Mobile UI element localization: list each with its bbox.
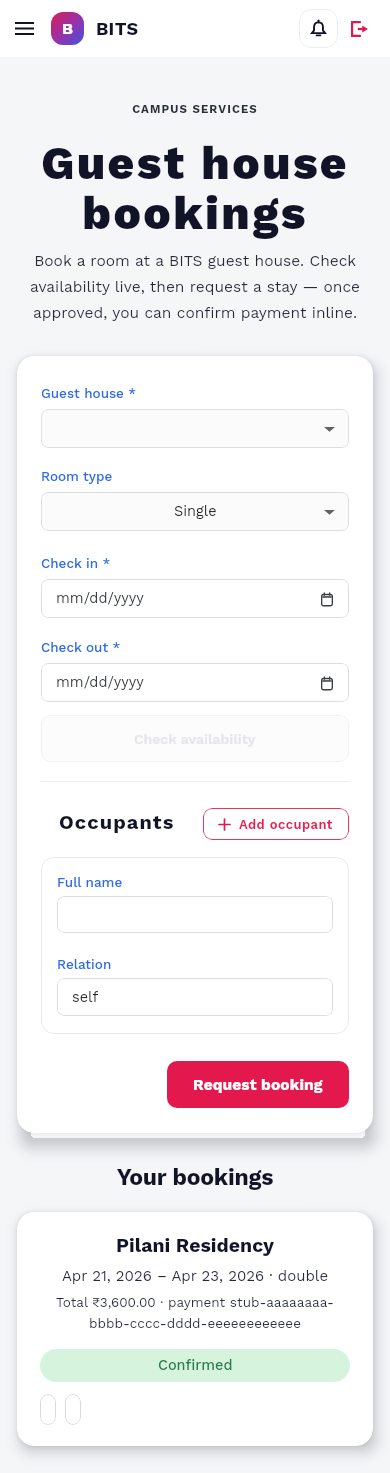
button[interactable] — [57, 896, 333, 933]
staticText: Request booking — [193, 1076, 323, 1094]
staticText: Total ₹3,600.00 · payment stub-aaaaaaaa-… — [40, 1294, 350, 1332]
button[interactable] — [41, 409, 349, 448]
button[interactable]: mm/dd/yyyy — [41, 579, 349, 618]
staticText: Guest house * — [41, 385, 137, 401]
staticText: mm/dd/yyyy — [56, 674, 144, 691]
button[interactable]: Notifications — [299, 9, 338, 48]
button[interactable]: mm/dd/yyyy — [41, 663, 349, 702]
button[interactable]: Add occupant — [203, 808, 349, 840]
button[interactable]: self — [57, 978, 333, 1016]
button[interactable]: Cancel booking — [65, 1394, 81, 1425]
staticText: Pilani Residency — [40, 1234, 350, 1257]
staticText: Occupants — [59, 810, 175, 833]
staticText: BITS — [96, 18, 139, 39]
staticText: Check availability — [134, 731, 256, 747]
staticText: Add occupant — [239, 817, 333, 832]
staticText: Confirmed — [158, 1357, 233, 1374]
staticText: B — [62, 19, 73, 38]
staticText: Single — [174, 503, 217, 520]
staticText: Book a room at a BITS guest house. Check… — [16, 252, 374, 322]
staticText: mm/dd/yyyy — [56, 590, 144, 607]
button[interactable]: Request booking — [167, 1061, 349, 1108]
staticText: Relation — [57, 956, 112, 972]
staticText: Guest house bookings — [0, 136, 390, 240]
button[interactable]: Single — [41, 492, 349, 531]
button[interactable]: Booking action — [40, 1394, 56, 1425]
staticText: Check out * — [41, 639, 121, 655]
button[interactable]: Log out — [346, 16, 372, 42]
staticText: Apr 21, 2026 – Apr 23, 2026 · double — [40, 1267, 350, 1285]
staticText: Check in * — [41, 555, 111, 571]
staticText: self — [72, 989, 99, 1006]
button[interactable]: Open menu — [8, 12, 41, 45]
staticText: Your bookings — [0, 1164, 390, 1191]
staticText: Room type — [41, 468, 113, 484]
button[interactable]: Check availability — [41, 715, 349, 762]
staticText: CAMPUS SERVICES — [0, 102, 390, 115]
staticText: Full name — [57, 874, 123, 890]
